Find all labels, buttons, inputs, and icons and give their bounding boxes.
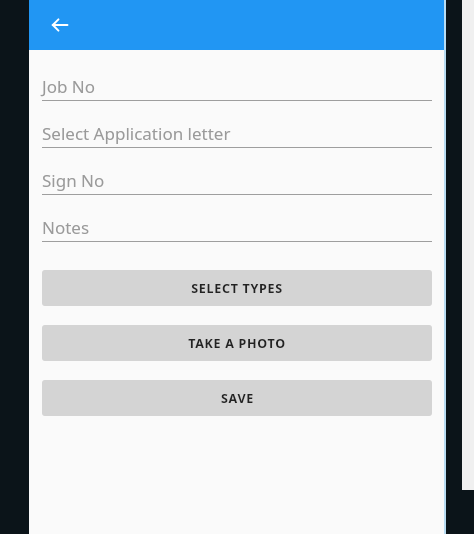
button[interactable]: Job No [42, 72, 432, 101]
button[interactable]: Back [40, 5, 80, 45]
button[interactable]: SELECT TYPES [42, 270, 432, 306]
button[interactable]: Select Application letter [42, 119, 432, 148]
staticText: Select Application letter [42, 122, 231, 145]
button[interactable]: TAKE A PHOTO [42, 325, 432, 361]
button[interactable]: Sign No [42, 166, 432, 195]
staticText: SAVE [221, 390, 254, 407]
button[interactable]: SAVE [42, 380, 432, 416]
button[interactable]: Notes [42, 213, 432, 242]
staticText: SELECT TYPES [191, 280, 283, 297]
staticText: Notes [42, 216, 90, 239]
staticText: Job No [42, 75, 96, 98]
staticText: Sign No [42, 169, 105, 192]
staticText: TAKE A PHOTO [188, 335, 286, 352]
